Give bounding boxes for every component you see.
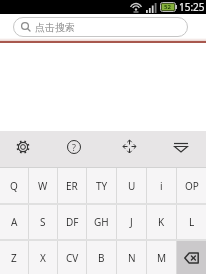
button[interactable]: DF	[58, 205, 86, 239]
staticText: TY	[96, 179, 108, 193]
staticText: K	[158, 215, 165, 229]
button[interactable]: TY	[87, 168, 116, 203]
staticText: CV	[66, 251, 79, 265]
button[interactable]: GH	[87, 205, 116, 239]
staticText: S	[40, 215, 46, 229]
button[interactable]: U	[117, 168, 146, 203]
staticText: 52	[164, 3, 171, 11]
button[interactable]: K	[147, 205, 176, 239]
button[interactable]: X	[29, 241, 57, 274]
button[interactable]: S	[29, 205, 57, 239]
staticText: Q	[10, 179, 18, 193]
staticText: OP	[185, 179, 199, 193]
button[interactable]: CV	[58, 241, 86, 274]
staticText: DF	[66, 215, 79, 229]
staticText: GH	[94, 215, 109, 229]
staticText: Z	[11, 251, 17, 265]
button[interactable]: J	[117, 205, 146, 239]
button[interactable]	[0, 131, 45, 162]
staticText: ?	[72, 141, 76, 153]
button[interactable]	[177, 241, 206, 274]
button[interactable]: W	[29, 168, 57, 203]
button[interactable]: A	[0, 205, 28, 239]
staticText: ER	[66, 179, 78, 193]
button[interactable]: B	[87, 241, 116, 274]
button[interactable]: ?	[45, 131, 103, 162]
staticText: 点击搜索	[35, 21, 75, 34]
staticText: B	[98, 251, 105, 265]
staticText: W	[38, 179, 48, 193]
staticText: X	[40, 251, 46, 265]
staticText: U	[128, 179, 136, 193]
staticText: L	[189, 215, 195, 229]
button[interactable]: ER	[58, 168, 86, 203]
staticText: 15:25	[179, 0, 205, 14]
button[interactable]: OP	[177, 168, 206, 203]
staticText: A	[11, 215, 18, 229]
button[interactable]: 点击搜索	[13, 17, 188, 37]
button[interactable]: i	[147, 168, 176, 203]
staticText: M	[157, 251, 167, 265]
button[interactable]: N	[117, 241, 146, 274]
button[interactable]: Z	[0, 241, 28, 274]
staticText: J	[130, 215, 133, 229]
button[interactable]: M	[147, 241, 176, 274]
button[interactable]: L	[177, 205, 206, 239]
button[interactable]	[155, 131, 206, 162]
button[interactable]: Q	[0, 168, 28, 203]
staticText: i	[160, 179, 163, 193]
staticText: N	[128, 251, 136, 265]
button[interactable]	[103, 131, 155, 162]
